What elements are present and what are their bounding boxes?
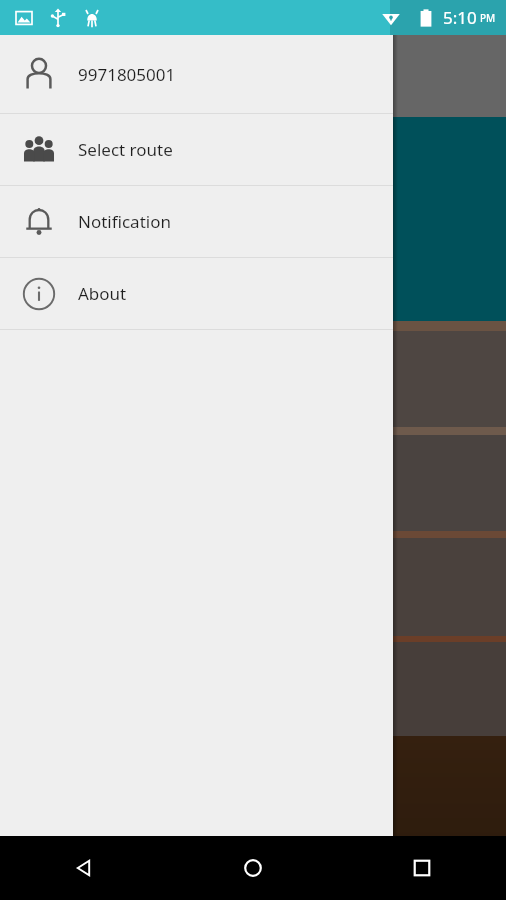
button[interactable]: Back xyxy=(57,841,111,895)
button[interactable]: 9971805001 xyxy=(0,35,393,113)
button[interactable]: About xyxy=(0,258,393,329)
button[interactable]: Notification xyxy=(0,186,393,257)
staticText: PM xyxy=(480,11,496,25)
staticText: About xyxy=(78,282,127,305)
staticText: Select route xyxy=(78,138,173,161)
staticText: Notification xyxy=(78,210,171,233)
button[interactable]: Recent apps xyxy=(395,841,449,895)
staticText: 9971805001 xyxy=(78,63,176,86)
staticText: 5:10 xyxy=(443,6,477,29)
button[interactable]: Home xyxy=(226,841,280,895)
button[interactable]: Select route xyxy=(0,114,393,185)
